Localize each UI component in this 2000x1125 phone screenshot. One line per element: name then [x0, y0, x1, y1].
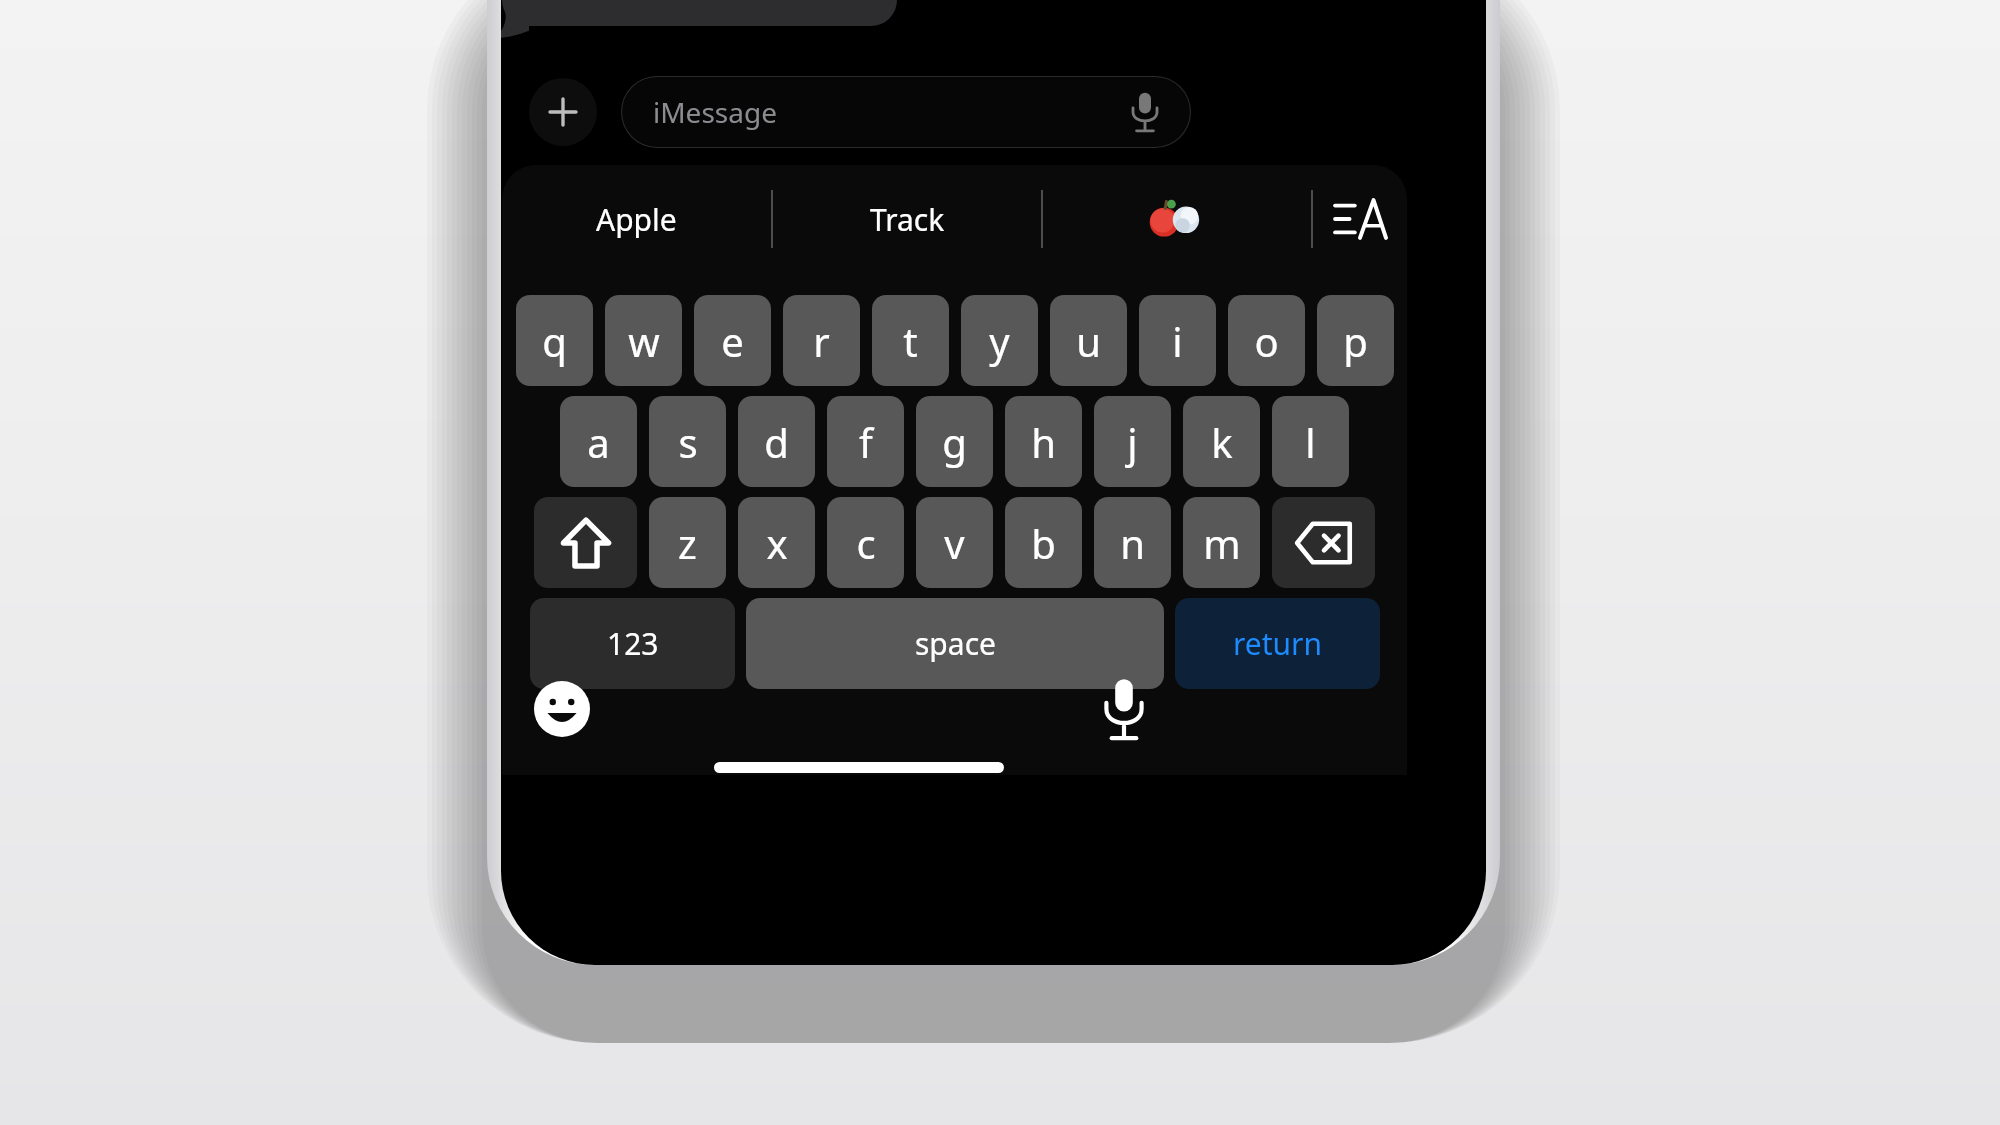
button[interactable]: Dictation [1093, 678, 1155, 740]
staticText: m [1203, 516, 1241, 570]
button[interactable]: c [827, 497, 904, 588]
staticText: g [942, 415, 967, 469]
button[interactable]: r [783, 295, 860, 386]
staticText: Track [870, 199, 945, 240]
staticText: c [856, 516, 876, 570]
button[interactable]: h [1005, 396, 1082, 487]
staticText: return [1233, 623, 1323, 664]
staticText: a [587, 415, 610, 469]
staticText: w [628, 314, 660, 368]
button[interactable]: 123 [530, 598, 735, 689]
button[interactable]: w [605, 295, 682, 386]
staticText: z [678, 516, 697, 570]
button[interactable]: j [1094, 396, 1171, 487]
staticText: iMessage [653, 93, 777, 131]
button[interactable]: m [1183, 497, 1260, 588]
staticText: k [1211, 415, 1233, 469]
button[interactable]: Dictate [1125, 92, 1165, 132]
button[interactable]: s [649, 396, 726, 487]
button[interactable]: i [1139, 295, 1216, 386]
staticText: v [944, 516, 965, 570]
staticText: s [678, 415, 698, 469]
button[interactable]: p [1317, 295, 1394, 386]
staticText: y [989, 314, 1010, 368]
button[interactable]: Apple [502, 165, 771, 273]
button[interactable]: d [738, 396, 815, 487]
staticText: q [542, 314, 567, 368]
button[interactable]: Delete [1272, 497, 1375, 588]
button[interactable]: v [916, 497, 993, 588]
staticText: i [1172, 314, 1183, 368]
button[interactable]: t [872, 295, 949, 386]
staticText: e [721, 314, 744, 368]
staticText: l [1305, 415, 1316, 469]
staticText: n [1120, 516, 1145, 570]
staticText: f [859, 415, 873, 469]
button[interactable]: return [1175, 598, 1380, 689]
staticText: 123 [607, 623, 659, 664]
button[interactable]: n [1094, 497, 1171, 588]
button[interactable]: l [1272, 396, 1349, 487]
button[interactable]: k [1183, 396, 1260, 487]
button[interactable]: o [1228, 295, 1305, 386]
button[interactable]: Track [773, 165, 1041, 273]
staticText: p [1343, 314, 1368, 368]
staticText: r [813, 314, 830, 368]
staticText: h [1031, 415, 1056, 469]
staticText: d [764, 415, 789, 469]
button[interactable]: q [516, 295, 593, 386]
button[interactable]: y [961, 295, 1038, 386]
button[interactable]: This iOS redesign looks sick! [502, 0, 897, 26]
button[interactable]: Add attachment [529, 78, 597, 146]
button[interactable]: Emoji suggestion [1043, 165, 1311, 273]
staticText: space [915, 623, 996, 664]
button[interactable]: space [746, 598, 1164, 689]
button[interactable]: Emoji [531, 678, 593, 740]
staticText: u [1076, 314, 1101, 368]
button[interactable]: Shift [534, 497, 637, 588]
button[interactable]: z [649, 497, 726, 588]
button[interactable]: e [694, 295, 771, 386]
button[interactable]: g [916, 396, 993, 487]
button[interactable]: u [1050, 295, 1127, 386]
button[interactable]: x [738, 497, 815, 588]
staticText: t [903, 314, 918, 368]
staticText: o [1254, 314, 1279, 368]
button[interactable]: f [827, 396, 904, 487]
staticText: Apple [596, 199, 677, 240]
button[interactable]: b [1005, 497, 1082, 588]
staticText: x [766, 516, 788, 570]
button[interactable]: a [560, 396, 637, 487]
button[interactable]: iMessage [621, 76, 1191, 148]
staticText: j [1127, 415, 1138, 469]
button[interactable]: Formatting [1313, 165, 1407, 273]
staticText: b [1031, 516, 1056, 570]
